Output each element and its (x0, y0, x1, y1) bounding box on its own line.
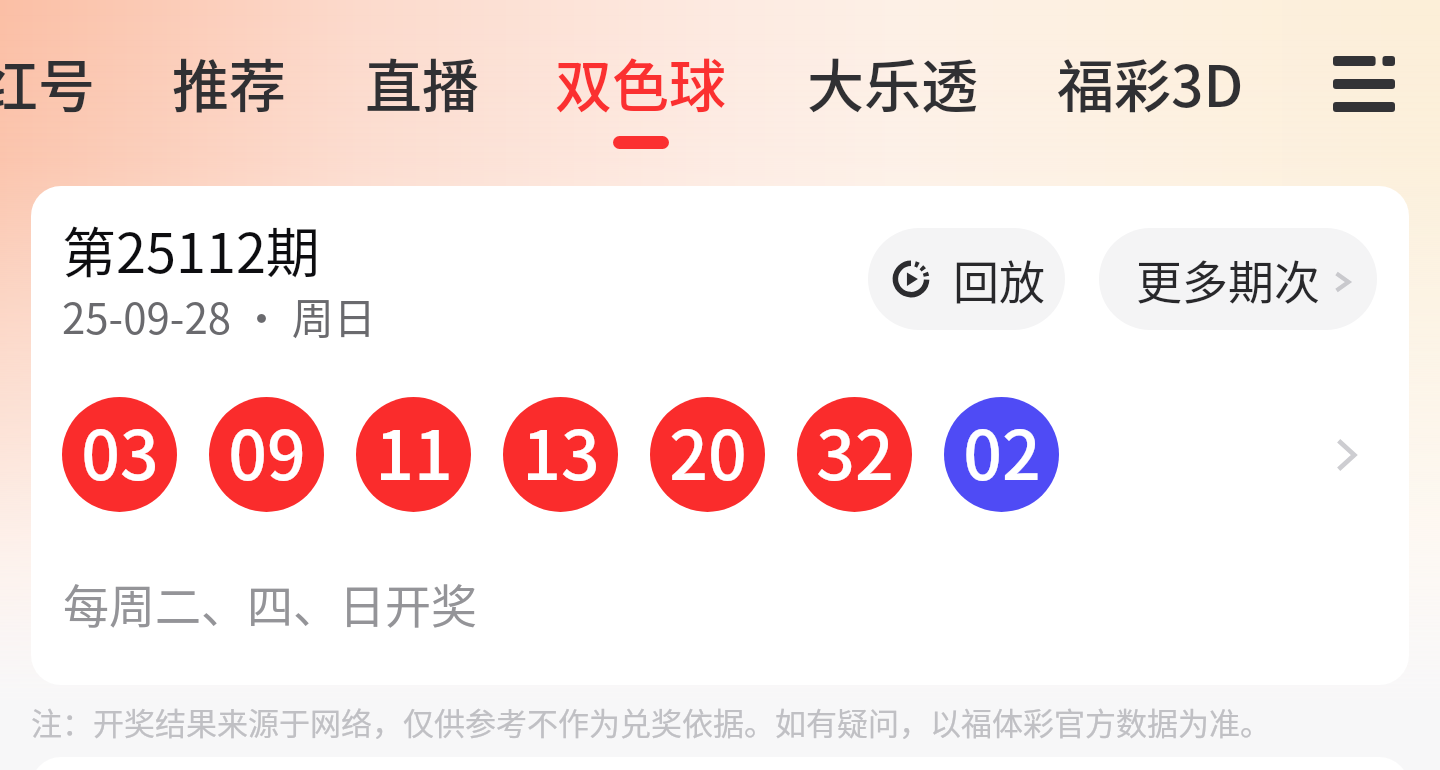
button[interactable]: 09 (209, 397, 324, 512)
staticText: 25-09-28 · 周日 (62, 285, 376, 346)
button[interactable]: 直播 (365, 41, 479, 124)
staticText: 20 (669, 401, 747, 499)
staticText: 11 (375, 401, 453, 499)
button[interactable]: 11 (356, 397, 471, 512)
button[interactable]: 福彩3D (1057, 41, 1244, 124)
staticText: 推荐 (172, 41, 286, 124)
button[interactable]: More numbers (1314, 425, 1378, 485)
staticText: 每周二、四、日开奖 (63, 570, 477, 637)
staticText: 更多期次 (1136, 246, 1320, 313)
staticText: 回放 (953, 246, 1045, 313)
staticText: 直播 (365, 41, 479, 124)
button[interactable]: 大乐透 (807, 41, 978, 124)
staticText: 注：开奖结果来源于网络，仅供参考不作为兑奖依据。如有疑问，以福体彩官方数据为准。 (31, 699, 1271, 744)
staticText: 32 (816, 401, 894, 499)
button[interactable]: 红号 (0, 41, 95, 124)
button[interactable]: 32 (797, 397, 912, 512)
staticText: 02 (963, 401, 1041, 499)
button[interactable]: 双色球 (555, 41, 726, 149)
button[interactable]: 03 (62, 397, 177, 512)
staticText: 03 (81, 401, 159, 499)
button[interactable]: 回放 (868, 228, 1065, 330)
staticText: 双色球 (555, 41, 726, 124)
staticText: 大乐透 (807, 41, 978, 124)
button[interactable]: 推荐 (172, 41, 286, 124)
staticText: 红号 (0, 41, 95, 124)
button[interactable]: 13 (503, 397, 618, 512)
button[interactable]: 更多期次 (1099, 228, 1377, 330)
button[interactable]: 02 (944, 397, 1059, 512)
staticText: 13 (522, 401, 600, 499)
staticText: 第25112期 (62, 210, 320, 288)
staticText: 09 (228, 401, 306, 499)
button[interactable]: 20 (650, 397, 765, 512)
staticText: 福彩3D (1057, 41, 1244, 124)
button[interactable]: Menu (1311, 29, 1417, 139)
